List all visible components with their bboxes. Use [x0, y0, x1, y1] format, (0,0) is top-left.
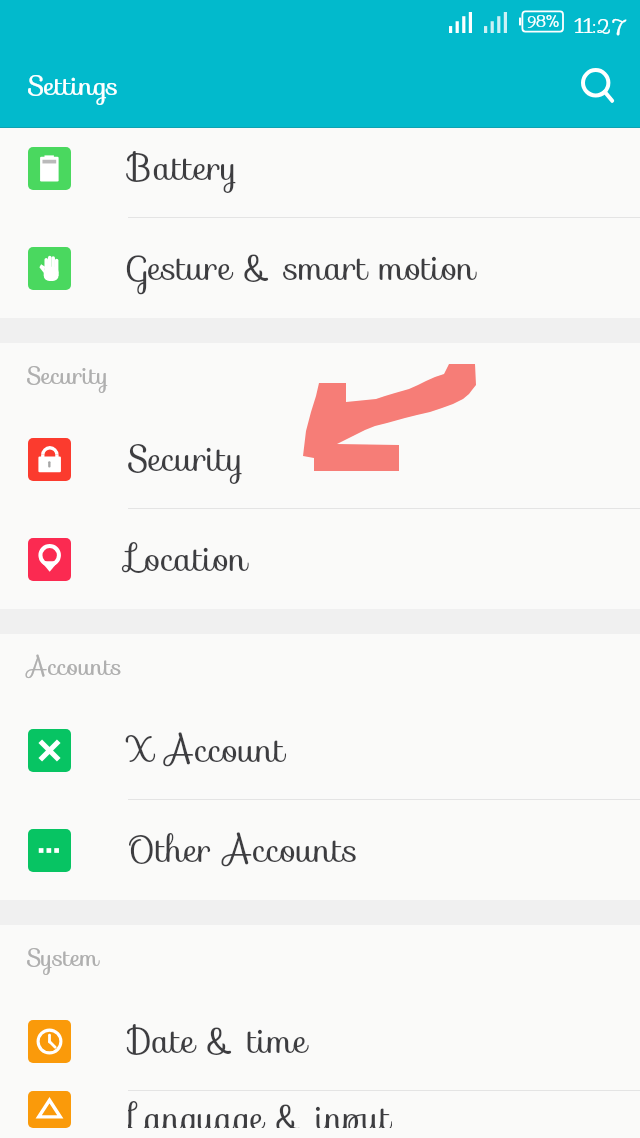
staticText: Security — [128, 432, 244, 486]
staticText: Security — [27, 357, 109, 395]
button[interactable]: Gesture & smart motion — [0, 218, 640, 318]
button[interactable]: Search — [579, 67, 629, 117]
button[interactable]: X Account — [0, 700, 640, 800]
button[interactable]: Battery — [0, 128, 640, 218]
staticText: Other Accounts — [128, 823, 358, 877]
staticText: 98% — [527, 10, 560, 33]
button[interactable]: Security — [0, 409, 640, 509]
button[interactable]: Other Accounts — [0, 800, 640, 900]
staticText: 11:27 — [575, 11, 628, 41]
button[interactable]: Language & input — [0, 1091, 640, 1128]
button[interactable]: Date & time — [0, 991, 640, 1091]
staticText: Date & time — [128, 1014, 308, 1068]
staticText: System — [27, 939, 99, 977]
staticText: Language & input — [128, 1091, 392, 1128]
staticText: X Account — [128, 723, 286, 777]
staticText: Battery — [128, 141, 238, 195]
staticText: Gesture & smart motion — [128, 241, 476, 295]
staticText: Location — [128, 532, 248, 586]
staticText: Accounts — [27, 648, 122, 686]
staticText: Settings — [28, 64, 119, 107]
button[interactable]: Location — [0, 509, 640, 609]
